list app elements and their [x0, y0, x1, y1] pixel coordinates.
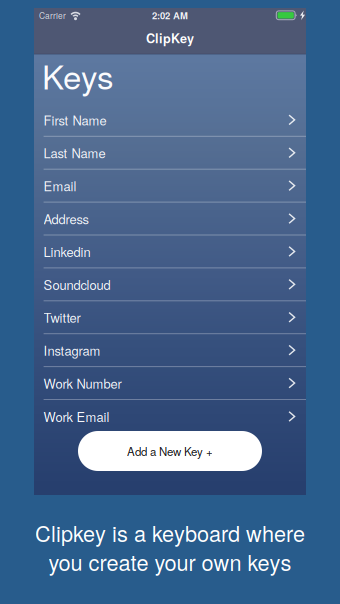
- staticText: Address: [44, 209, 89, 228]
- staticText: Soundcloud: [44, 275, 111, 294]
- staticText: Email: [44, 176, 77, 195]
- button[interactable]: Twitter: [34, 301, 306, 334]
- button[interactable]: Work Email: [34, 400, 306, 433]
- staticText: ClipKey: [146, 29, 194, 47]
- staticText: Work Email: [44, 407, 110, 426]
- button[interactable]: Work Number: [34, 367, 306, 400]
- staticText: Keys: [42, 51, 114, 99]
- staticText: First Name: [44, 111, 107, 129]
- button[interactable]: Email: [34, 170, 306, 203]
- staticText: 2:02 AM: [152, 8, 188, 22]
- button[interactable]: First Name: [34, 104, 306, 137]
- staticText: Carrier: [39, 9, 66, 21]
- button[interactable]: Instagram: [34, 334, 306, 367]
- staticText: Instagram: [44, 341, 101, 359]
- button[interactable]: Soundcloud: [34, 268, 306, 301]
- staticText: Twitter: [44, 308, 81, 326]
- staticText: Last Name: [44, 143, 106, 162]
- staticText: you create your own keys: [48, 546, 291, 577]
- staticText: Linkedin: [44, 242, 91, 261]
- button[interactable]: Last Name: [34, 137, 306, 170]
- staticText: Add a New Key +: [127, 443, 213, 459]
- button[interactable]: Add a New Key +: [78, 431, 262, 471]
- staticText: Work Number: [44, 374, 122, 392]
- button[interactable]: Linkedin: [34, 235, 306, 268]
- button[interactable]: Address: [34, 203, 306, 235]
- staticText: Clipkey is a keyboard where: [35, 517, 305, 548]
